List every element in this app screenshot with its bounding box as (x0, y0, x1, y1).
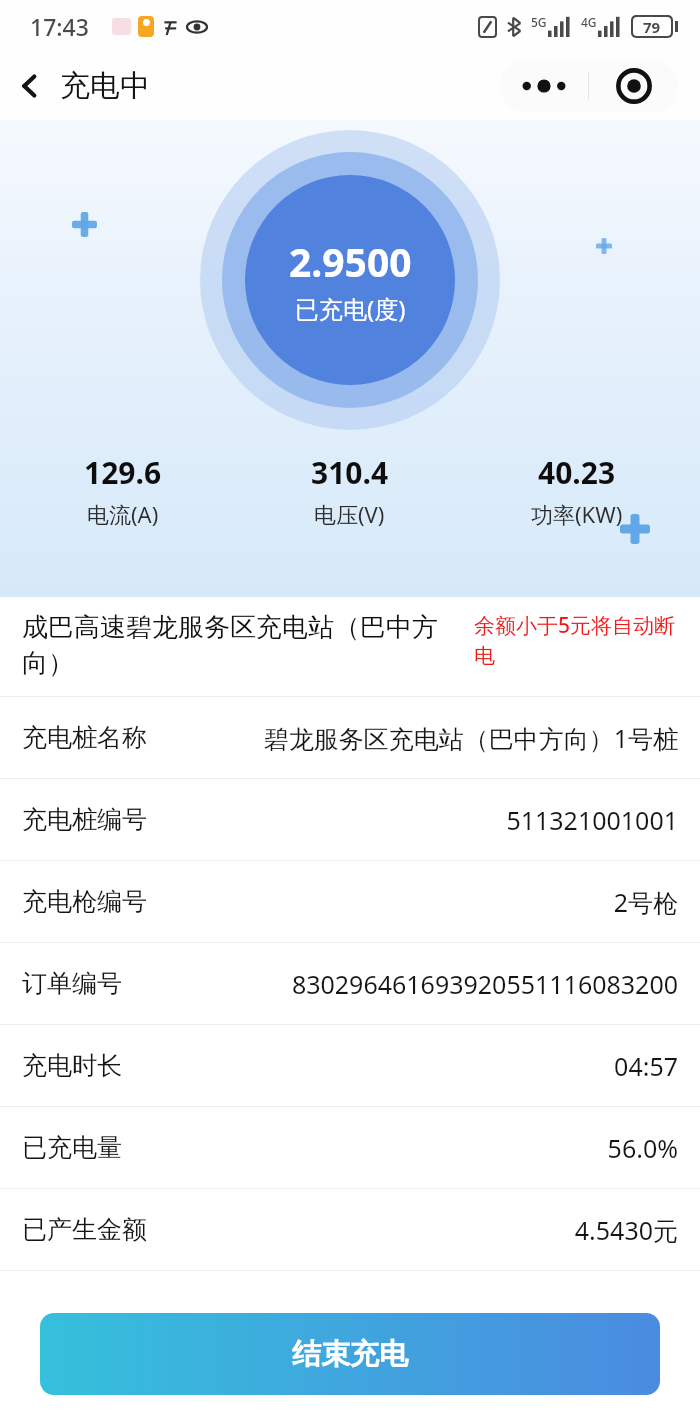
button[interactable]: 已充电量 (0, 1107, 700, 1188)
staticText: 已产生金额 (22, 1214, 147, 1245)
button[interactable]: 充电时长 (0, 1025, 700, 1106)
staticText: 2号枪 (161, 885, 678, 919)
button[interactable]: 充电枪编号 (0, 861, 700, 942)
button[interactable]: More options (500, 59, 588, 113)
staticText: 成巴高速碧龙服务区充电站（巴中方向） (22, 611, 466, 680)
button[interactable]: Back (0, 56, 60, 116)
staticText: 功率(KW) (531, 499, 623, 529)
staticText: 充电枪编号 (22, 886, 147, 917)
staticText: 结束充电 (292, 1336, 408, 1373)
staticText: 830296461693920551116083200 (136, 967, 678, 1001)
button[interactable]: 结束充电 (40, 1313, 660, 1395)
button[interactable]: 充电桩编号 (0, 779, 700, 860)
staticText: 碧龙服务区充电站（巴中方向）1号桩 (161, 721, 678, 755)
staticText: 充电桩编号 (22, 804, 147, 835)
staticText: 2.9500 (289, 235, 412, 288)
staticText: 79 (643, 17, 661, 36)
staticText: 5G (531, 14, 547, 30)
staticText: 余额小于5元将自动断电 (474, 611, 682, 669)
staticText: 17:43 (30, 11, 89, 42)
staticText: 40.23 (538, 452, 616, 493)
staticText: 充电桩名称 (22, 722, 147, 753)
staticText: 4G (581, 14, 597, 30)
staticText: 充电时长 (22, 1050, 122, 1081)
button[interactable]: 订单编号 (0, 943, 700, 1024)
staticText: 已充电量 (22, 1132, 122, 1163)
button[interactable]: 已产生金额 (0, 1189, 700, 1270)
staticText: 电压(V) (314, 499, 385, 529)
staticText: 已充电(度) (295, 292, 406, 325)
staticText: 订单编号 (22, 968, 122, 999)
button[interactable]: Target (589, 59, 678, 113)
staticText: 4.5430元 (161, 1213, 678, 1247)
button[interactable]: 充电桩名称 (0, 697, 700, 778)
staticText: 129.6 (84, 452, 162, 493)
staticText: 充电中 (60, 67, 150, 105)
staticText: 511321001001 (161, 803, 678, 837)
staticText: 56.0% (136, 1131, 678, 1165)
staticText: 04:57 (136, 1049, 678, 1083)
staticText: 310.4 (311, 452, 389, 493)
staticText: 电流(A) (87, 499, 159, 529)
